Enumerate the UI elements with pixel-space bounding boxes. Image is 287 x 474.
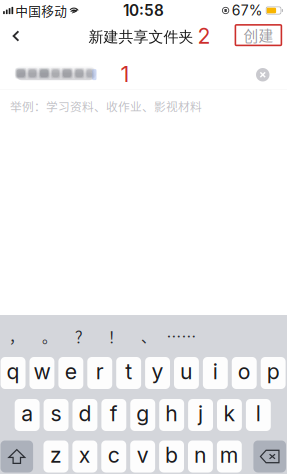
staticText: 67% xyxy=(232,2,263,19)
staticText: j xyxy=(198,400,203,426)
staticText: ？ xyxy=(75,325,90,347)
button[interactable]: 创建 xyxy=(235,25,281,45)
staticText: 。 xyxy=(42,325,57,347)
staticText: s xyxy=(50,400,61,426)
staticText: u xyxy=(180,358,193,384)
staticText: o xyxy=(238,358,251,384)
button[interactable]: q xyxy=(1,357,25,389)
staticText: x xyxy=(79,442,91,468)
staticText: p xyxy=(267,358,280,384)
staticText: g xyxy=(136,400,149,426)
staticText: t xyxy=(125,358,132,384)
staticText: 新建共享文件夹 xyxy=(88,28,193,46)
staticText: 10:58 xyxy=(123,1,164,20)
button[interactable]: y xyxy=(145,357,170,389)
staticText: f xyxy=(110,400,118,426)
staticText: q xyxy=(6,358,19,384)
staticText: m xyxy=(220,442,239,468)
staticText: 举例：学习资料、收作业、影视材料 xyxy=(10,98,202,115)
staticText: 中国移动 xyxy=(15,1,67,20)
staticText: l xyxy=(256,400,261,426)
button[interactable]: s xyxy=(44,399,68,431)
staticText: …… xyxy=(166,325,196,347)
staticText: 2 xyxy=(197,23,210,49)
button[interactable]: ， xyxy=(0,315,33,357)
button[interactable]: 清除 xyxy=(256,68,269,81)
button[interactable]: ！ xyxy=(99,315,132,357)
button[interactable]: h xyxy=(159,399,184,431)
button[interactable]: Shift xyxy=(0,440,33,472)
staticText: h xyxy=(165,400,178,426)
staticText: i xyxy=(213,358,218,384)
button[interactable]: m xyxy=(217,440,242,472)
staticText: ， xyxy=(9,325,24,347)
button[interactable]: v xyxy=(130,440,155,472)
staticText: ！ xyxy=(108,325,123,347)
button[interactable]: o xyxy=(232,357,257,389)
button[interactable]: r xyxy=(87,357,112,389)
button[interactable]: i xyxy=(203,357,228,389)
staticText: v xyxy=(137,442,149,468)
button[interactable]: g xyxy=(130,399,155,431)
button[interactable]: 、 xyxy=(132,315,165,357)
staticText: b xyxy=(165,442,178,468)
staticText: n xyxy=(194,442,207,468)
button[interactable]: w xyxy=(29,357,54,389)
button[interactable]: f xyxy=(101,399,126,431)
button[interactable]: k xyxy=(217,399,242,431)
button[interactable]: 删除 xyxy=(253,440,286,472)
staticText: w xyxy=(33,358,50,384)
button[interactable]: z xyxy=(43,440,68,472)
staticText: k xyxy=(223,400,235,426)
button[interactable]: b xyxy=(159,440,184,472)
button[interactable]: e xyxy=(58,357,83,389)
staticText: 、 xyxy=(141,325,156,347)
button[interactable]: …… xyxy=(165,315,198,357)
staticText: c xyxy=(108,442,120,468)
button[interactable]: d xyxy=(72,399,97,431)
button[interactable]: 。 xyxy=(33,315,66,357)
button[interactable]: j xyxy=(188,399,213,431)
staticText: a xyxy=(21,400,33,426)
button[interactable]: u xyxy=(174,357,199,389)
button[interactable]: p xyxy=(261,357,286,389)
staticText: z xyxy=(50,442,62,468)
staticText: 创建 xyxy=(243,24,273,46)
button[interactable]: 返回 xyxy=(1,23,31,49)
staticText: y xyxy=(151,358,163,384)
staticText: r xyxy=(96,358,104,384)
staticText: e xyxy=(65,358,77,384)
button[interactable]: l xyxy=(246,399,271,431)
button[interactable]: a xyxy=(15,399,40,431)
button[interactable]: t xyxy=(116,357,141,389)
button[interactable]: ？ xyxy=(66,315,99,357)
staticText: d xyxy=(78,400,91,426)
button[interactable]: n xyxy=(188,440,213,472)
button[interactable]: c xyxy=(101,440,126,472)
staticText: 1 xyxy=(120,61,129,87)
button[interactable]: x xyxy=(72,440,97,472)
